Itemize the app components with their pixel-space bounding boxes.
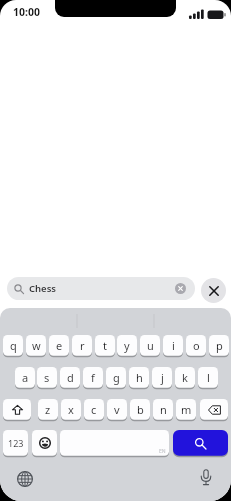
staticText: l [207, 370, 210, 385]
button[interactable]: g [106, 367, 126, 388]
button[interactable]: u [140, 335, 160, 356]
staticText: 10:00 [13, 5, 40, 19]
button[interactable]: c [84, 399, 104, 420]
staticText: e [56, 338, 63, 353]
button[interactable] [15, 469, 35, 489]
staticText: x [68, 402, 74, 417]
button[interactable]: f [83, 367, 103, 388]
button[interactable]: k [175, 367, 195, 388]
staticText: q [10, 338, 17, 353]
button[interactable]: i [163, 335, 183, 356]
staticText: m [181, 402, 192, 417]
staticText: v [114, 402, 120, 417]
staticText: f [91, 370, 95, 385]
button[interactable] [197, 468, 215, 488]
button[interactable] [32, 430, 57, 456]
button[interactable]: q [3, 335, 23, 356]
button[interactable]: b [130, 399, 150, 420]
staticText: b [137, 402, 144, 417]
button[interactable]: e [49, 335, 69, 356]
staticText: h [136, 370, 143, 385]
button[interactable]: r [72, 335, 92, 356]
button[interactable]: x [61, 399, 81, 420]
staticText: d [67, 370, 74, 385]
staticText: n [160, 402, 167, 417]
staticText: 123 [8, 437, 24, 449]
button[interactable]: t [95, 335, 115, 356]
staticText: EN [159, 448, 166, 455]
button[interactable]: z [38, 399, 58, 420]
staticText: i [172, 338, 175, 353]
staticText: c [91, 402, 97, 417]
staticText: Chess [29, 282, 57, 295]
button[interactable]: 123 [3, 430, 28, 456]
button[interactable] [3, 399, 31, 420]
button[interactable]: j [152, 367, 172, 388]
button[interactable]: p [209, 335, 229, 356]
staticText: g [113, 370, 120, 385]
button[interactable]: v [107, 399, 127, 420]
staticText: t [103, 338, 107, 353]
button[interactable]: h [129, 367, 149, 388]
button[interactable]: Chess [7, 277, 195, 300]
staticText: z [45, 402, 51, 417]
button[interactable]: y [117, 335, 137, 356]
button[interactable] [201, 278, 226, 303]
button[interactable]: s [37, 367, 57, 388]
button[interactable]: n [153, 399, 173, 420]
button[interactable]: l [198, 367, 218, 388]
staticText: s [44, 370, 50, 385]
button[interactable]: m [176, 399, 196, 420]
button[interactable]: w [26, 335, 46, 356]
button[interactable] [173, 430, 228, 456]
button[interactable]: a [15, 367, 35, 388]
staticText: y [124, 338, 130, 353]
button[interactable] [200, 399, 228, 420]
staticText: a [22, 370, 29, 385]
staticText: p [216, 338, 223, 353]
staticText: r [80, 338, 85, 353]
button[interactable] [175, 283, 186, 294]
staticText: k [182, 370, 188, 385]
staticText: w [32, 338, 41, 353]
staticText: o [193, 338, 200, 353]
button[interactable]: d [60, 367, 80, 388]
staticText: j [161, 370, 164, 385]
button[interactable]: o [186, 335, 206, 356]
staticText: u [147, 338, 154, 353]
button[interactable]: EN [60, 430, 169, 456]
